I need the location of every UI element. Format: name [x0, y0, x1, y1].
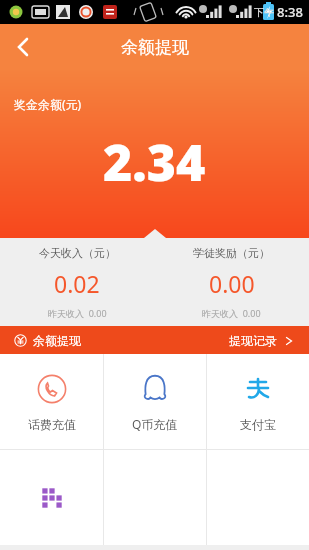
staticText: 学徒奖励（元）	[193, 246, 270, 260]
staticText: 下午	[254, 6, 274, 19]
staticText: 今天收入（元）	[39, 246, 116, 260]
button[interactable]: QR code	[0, 450, 103, 545]
staticText: 余额提现	[121, 37, 189, 58]
button[interactable]: 支付宝	[207, 354, 309, 449]
staticText: 0.00	[209, 268, 255, 299]
staticText: 奖金余额(元)	[14, 96, 82, 112]
staticText: 昨天收入 0.00	[202, 307, 261, 319]
button[interactable]: Back	[0, 24, 46, 70]
button[interactable]: 话费充值	[0, 354, 103, 449]
staticText: 话费充值	[28, 417, 76, 432]
staticText: 8:38	[277, 3, 303, 21]
staticText: 0.02	[54, 268, 100, 299]
staticText: 余额提现	[33, 333, 81, 348]
button[interactable]: 提现记录	[229, 333, 293, 348]
button[interactable]: 余额提现	[14, 333, 81, 348]
button[interactable]: 今天收入（元）	[0, 238, 154, 326]
staticText: 2.34	[103, 128, 206, 196]
staticText: 支付宝	[240, 417, 276, 432]
button[interactable]: 学徒奖励（元）	[154, 238, 309, 326]
button[interactable]: Q币充值	[104, 354, 206, 449]
staticText: Q币充值	[132, 416, 178, 432]
staticText: 提现记录	[229, 333, 277, 348]
staticText: 昨天收入 0.00	[48, 307, 107, 319]
